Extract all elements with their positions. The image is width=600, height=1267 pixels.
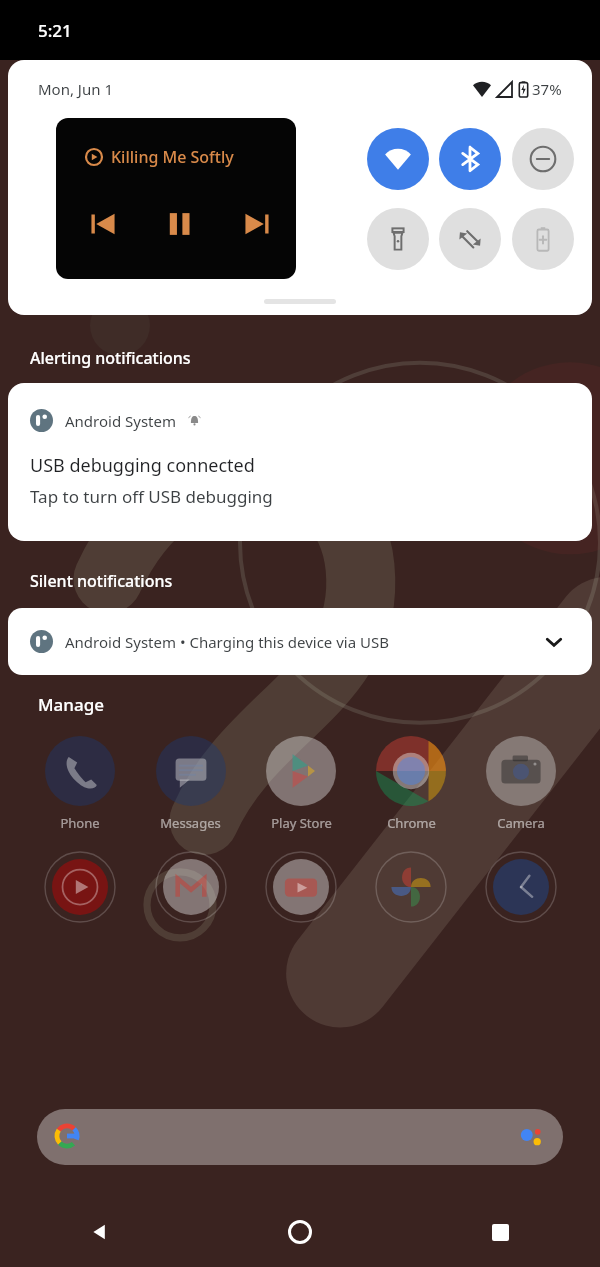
button[interactable]: Clock bbox=[466, 852, 576, 922]
button[interactable]: Gmail bbox=[135, 852, 246, 922]
button[interactable]: Messages bbox=[135, 736, 246, 832]
button[interactable] bbox=[37, 1109, 563, 1165]
button[interactable]: Expand bbox=[540, 628, 568, 656]
button[interactable]: Wi-Fi bbox=[367, 128, 429, 190]
staticText: Play Store bbox=[271, 814, 332, 832]
button[interactable]: Play Store bbox=[246, 736, 356, 832]
staticText: Tap to turn off USB debugging bbox=[30, 485, 273, 508]
staticText: Camera bbox=[497, 814, 545, 832]
staticText: Phone bbox=[60, 814, 100, 832]
button[interactable]: Back bbox=[0, 1203, 200, 1261]
button[interactable]: YouTube bbox=[246, 852, 356, 922]
button[interactable]: Pause bbox=[163, 207, 197, 241]
staticText: Messages bbox=[160, 814, 221, 832]
button[interactable]: YT Music bbox=[24, 852, 135, 922]
staticText: 5:21 bbox=[38, 19, 72, 42]
button[interactable]: Android System • Charging this device vi… bbox=[8, 608, 592, 675]
button[interactable]: Killing Me Softly bbox=[56, 118, 296, 279]
staticText: 37% bbox=[532, 79, 562, 99]
staticText: Android System bbox=[65, 411, 177, 431]
button[interactable]: Bluetooth bbox=[439, 128, 501, 190]
button[interactable]: Previous track bbox=[86, 207, 120, 241]
staticText: Chrome bbox=[387, 814, 436, 832]
button[interactable]: Do not disturb bbox=[512, 128, 574, 190]
button[interactable]: Chrome bbox=[356, 736, 466, 832]
staticText: Silent notifications bbox=[30, 570, 173, 592]
staticText: Manage bbox=[38, 693, 105, 716]
staticText: Mon, Jun 1 bbox=[38, 79, 113, 99]
button[interactable]: Android System bbox=[8, 383, 592, 541]
button[interactable]: Recent apps bbox=[400, 1203, 600, 1261]
button[interactable]: Photos bbox=[356, 852, 466, 922]
staticText: Killing Me Softly bbox=[111, 146, 234, 168]
staticText: USB debugging connected bbox=[30, 453, 255, 478]
button[interactable]: Home bbox=[200, 1203, 400, 1261]
button[interactable]: Auto-rotate bbox=[439, 208, 501, 270]
staticText: Alerting notifications bbox=[30, 347, 191, 369]
button[interactable]: Battery Saver bbox=[512, 208, 574, 270]
button[interactable]: Phone bbox=[24, 736, 135, 832]
button[interactable]: Next track bbox=[240, 207, 274, 241]
button[interactable]: Flashlight bbox=[367, 208, 429, 270]
staticText: Android System • Charging this device vi… bbox=[65, 632, 389, 652]
button[interactable]: Camera bbox=[466, 736, 576, 832]
